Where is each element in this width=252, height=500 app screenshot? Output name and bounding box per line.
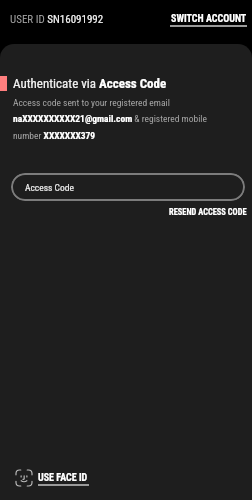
button[interactable]: Use Face ID xyxy=(16,470,89,486)
staticText: Authenticate via Access Code xyxy=(13,76,167,91)
button[interactable]: SWITCH ACCOUNT xyxy=(170,13,247,27)
button[interactable]: Access Code xyxy=(11,173,245,201)
staticText: Access code sent to your registered emai… xyxy=(13,97,218,142)
staticText: USE FACE ID xyxy=(38,472,88,484)
staticText: Access Code xyxy=(25,182,74,193)
other: Use Face ID xyxy=(16,470,32,486)
staticText: USER ID SN16091992 xyxy=(10,13,104,26)
button[interactable]: RESEND ACCESS CODE xyxy=(169,207,252,217)
staticText: SWITCH ACCOUNT xyxy=(171,13,247,25)
